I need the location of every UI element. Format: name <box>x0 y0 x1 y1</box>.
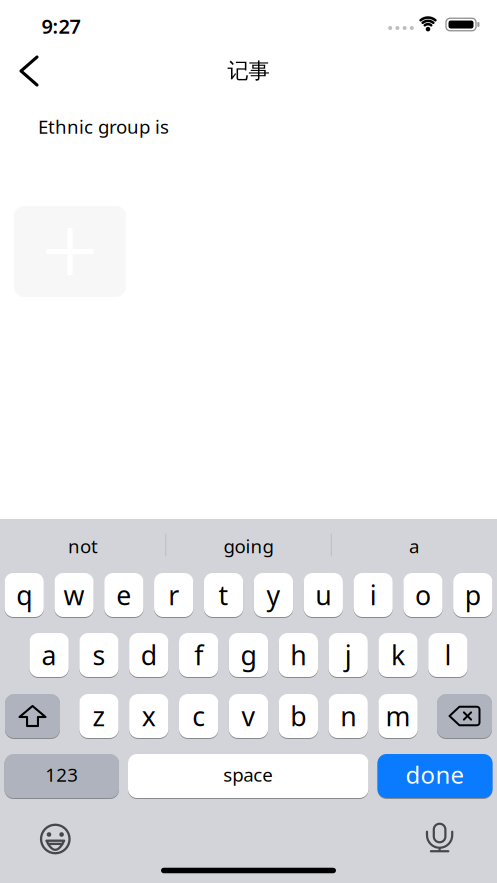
staticText: a <box>409 534 419 558</box>
staticText: k <box>391 637 405 673</box>
staticText: i <box>370 577 377 613</box>
button[interactable]: g <box>229 633 268 677</box>
staticText: d <box>141 637 157 673</box>
staticText: l <box>444 637 451 673</box>
button[interactable]: n <box>328 694 368 738</box>
staticText: a <box>42 637 57 673</box>
button[interactable]: y <box>254 573 293 617</box>
button[interactable]: s <box>79 633 119 677</box>
staticText: space <box>223 762 273 787</box>
button[interactable]: e <box>104 573 144 617</box>
staticText: v <box>241 698 255 734</box>
staticText: y <box>266 577 280 613</box>
staticText: f <box>194 637 203 673</box>
staticText: done <box>405 759 464 790</box>
staticText: 记事 <box>227 58 269 84</box>
staticText: h <box>290 637 306 673</box>
button[interactable]: done <box>377 754 492 798</box>
staticText: 9:27 <box>41 13 80 39</box>
staticText: c <box>192 698 205 734</box>
staticText: q <box>16 577 32 613</box>
button[interactable]: u <box>304 573 343 617</box>
button[interactable]: c <box>179 694 218 738</box>
button[interactable]: Dictation <box>419 818 460 858</box>
staticText: u <box>315 577 331 613</box>
staticText: j <box>345 637 352 673</box>
button[interactable]: v <box>229 694 268 738</box>
button[interactable]: j <box>328 633 368 677</box>
button[interactable]: Emoji <box>32 819 78 859</box>
button[interactable]: going <box>168 523 328 569</box>
button[interactable]: not <box>3 523 163 569</box>
staticText: o <box>415 577 431 613</box>
button[interactable]: d <box>129 633 168 677</box>
staticText: x <box>142 698 156 734</box>
button[interactable]: q <box>4 573 44 617</box>
staticText: n <box>340 698 356 734</box>
button[interactable]: x <box>129 694 168 738</box>
button[interactable]: l <box>428 633 468 677</box>
button[interactable]: space <box>128 754 368 798</box>
staticText: t <box>219 577 229 613</box>
button[interactable]: Shift <box>5 694 60 738</box>
button[interactable]: a <box>29 633 69 677</box>
button[interactable]: o <box>403 573 443 617</box>
button[interactable]: Delete <box>437 694 492 738</box>
staticText: z <box>92 698 105 734</box>
staticText: m <box>386 698 411 734</box>
button[interactable]: z <box>79 694 119 738</box>
button[interactable]: w <box>54 573 94 617</box>
button[interactable]: i <box>353 573 393 617</box>
staticText: g <box>240 637 256 673</box>
button[interactable]: m <box>378 694 418 738</box>
staticText: not <box>68 534 98 558</box>
button[interactable]: b <box>279 694 318 738</box>
staticText: s <box>92 637 105 673</box>
button[interactable]: p <box>453 573 493 617</box>
staticText: Ethnic group is <box>38 114 169 139</box>
staticText: b <box>290 698 306 734</box>
staticText: e <box>116 577 131 613</box>
button[interactable]: a <box>334 523 494 569</box>
button[interactable]: 123 <box>4 754 119 798</box>
staticText: 123 <box>45 762 78 787</box>
button[interactable]: r <box>154 573 193 617</box>
button[interactable]: f <box>179 633 218 677</box>
staticText: r <box>168 577 179 613</box>
staticText: going <box>223 534 273 558</box>
button[interactable]: h <box>279 633 318 677</box>
staticText: p <box>465 577 481 613</box>
button[interactable]: t <box>204 573 243 617</box>
button[interactable]: k <box>378 633 418 677</box>
staticText: w <box>63 577 84 613</box>
button[interactable]: Back <box>11 47 47 95</box>
